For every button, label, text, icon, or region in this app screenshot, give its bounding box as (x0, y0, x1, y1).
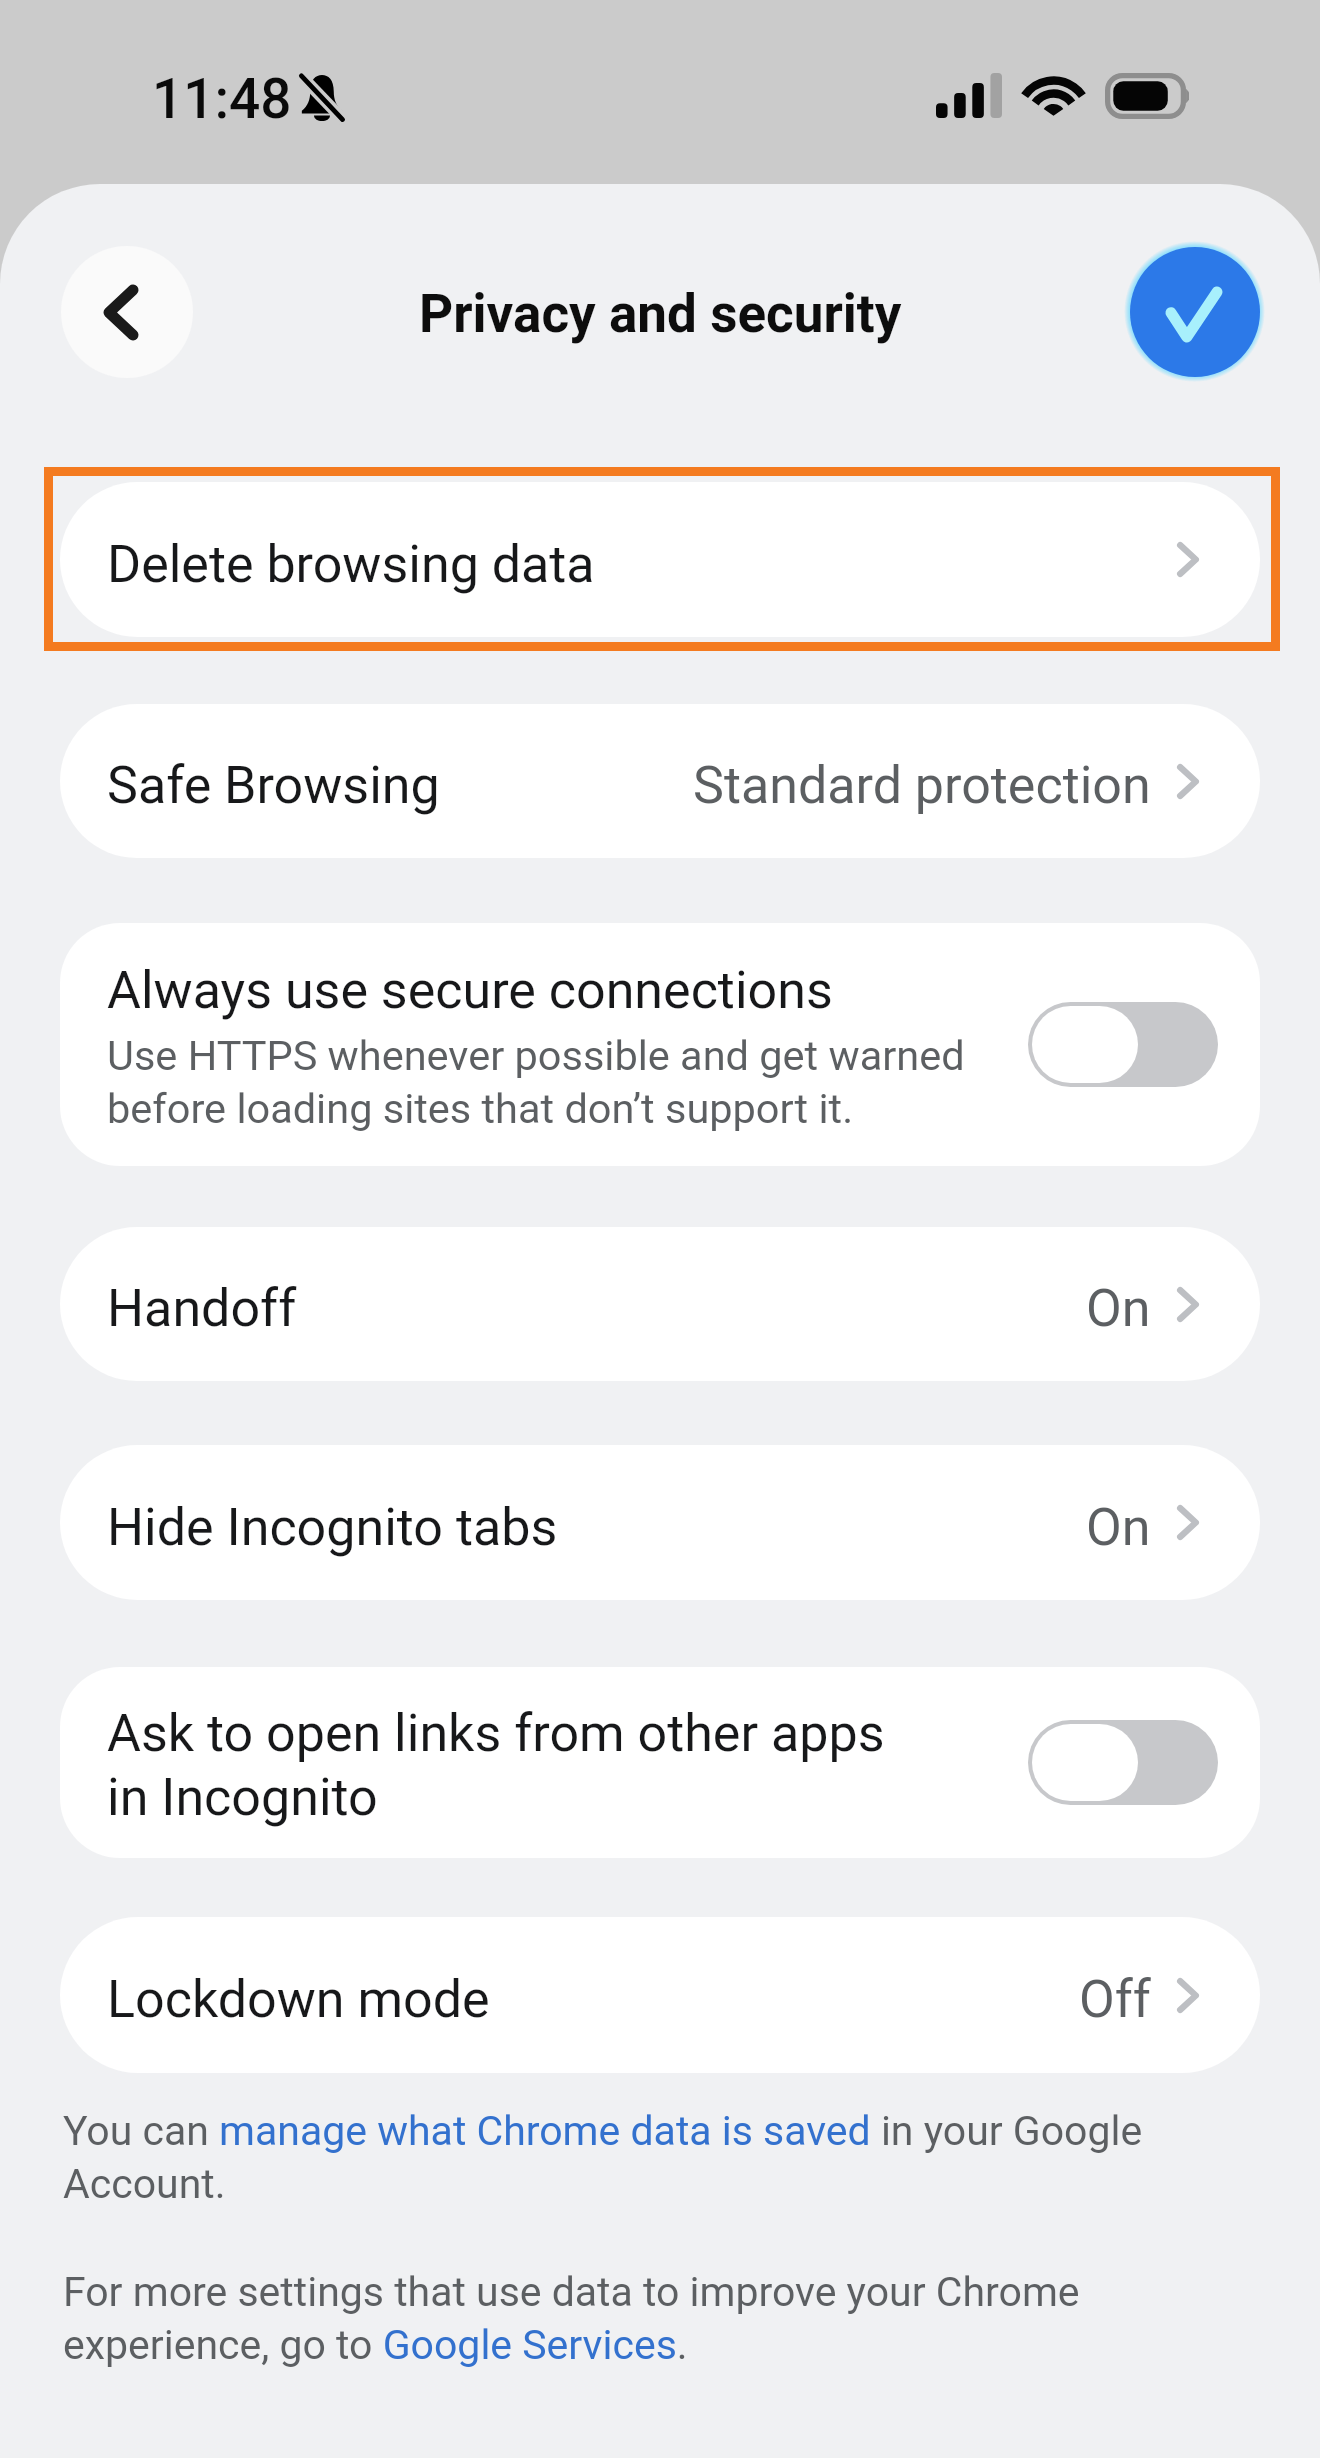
staticText: Always use secure connections (107, 957, 833, 1021)
button[interactable]: Toggle off (1028, 1002, 1218, 1087)
staticText: Handoff (107, 1275, 297, 1339)
button[interactable]: Lockdown mode (60, 1917, 1260, 2073)
staticText: Delete browsing data (107, 531, 595, 595)
button[interactable]: Hide Incognito tabs (60, 1445, 1260, 1600)
staticText: You can manage what Chrome data is saved… (63, 2103, 1188, 2209)
staticText: Safe Browsing (107, 752, 440, 816)
button[interactable]: Handoff (60, 1227, 1260, 1381)
button[interactable]: Back (61, 246, 193, 378)
button[interactable]: Delete browsing data (60, 482, 1260, 637)
staticText: For more settings that use data to impro… (63, 2264, 1188, 2370)
staticText: Lockdown mode (107, 1966, 490, 2030)
staticText: On (1086, 1275, 1151, 1339)
staticText: On (1086, 1494, 1151, 1558)
staticText: Off (1079, 1966, 1151, 2030)
staticText: Ask to open links from other apps in Inc… (107, 1700, 885, 1828)
button[interactable]: Safe Browsing (60, 704, 1260, 858)
button[interactable]: Toggle off (1028, 1720, 1218, 1805)
staticText: Standard protection (693, 752, 1151, 816)
staticText: Use HTTPS whenever possible and get warn… (107, 1028, 965, 1134)
button[interactable]: Always use secure connections (60, 923, 1260, 1166)
staticText: Hide Incognito tabs (107, 1494, 558, 1558)
staticText: 11:48 (152, 67, 292, 131)
button[interactable]: Done (1130, 247, 1260, 377)
staticText: Privacy and security (419, 283, 902, 345)
button[interactable]: Ask to open links from other apps in Inc… (60, 1667, 1260, 1858)
